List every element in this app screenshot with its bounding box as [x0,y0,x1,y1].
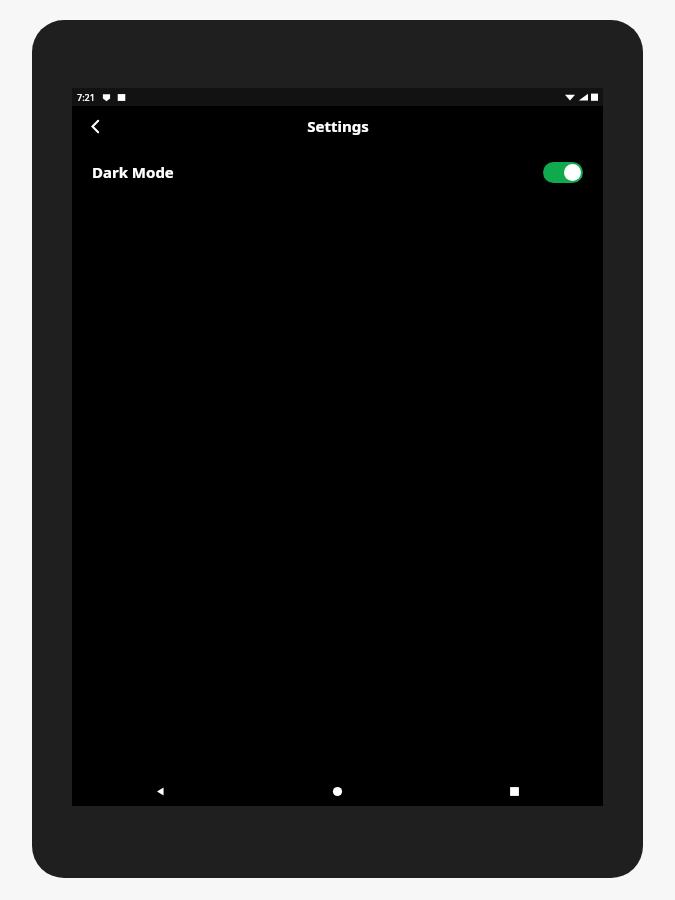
button[interactable]: Home [249,776,426,806]
button[interactable]: Dark Mode toggle, on [543,162,583,183]
button[interactable]: Back [78,109,112,143]
staticText: Dark Mode [92,162,174,182]
button[interactable]: Back [72,776,249,806]
staticText: 7:21 [77,91,95,103]
staticText: Settings [307,116,369,136]
button[interactable]: Dark Mode [72,146,603,198]
button[interactable]: Recent apps [426,776,603,806]
